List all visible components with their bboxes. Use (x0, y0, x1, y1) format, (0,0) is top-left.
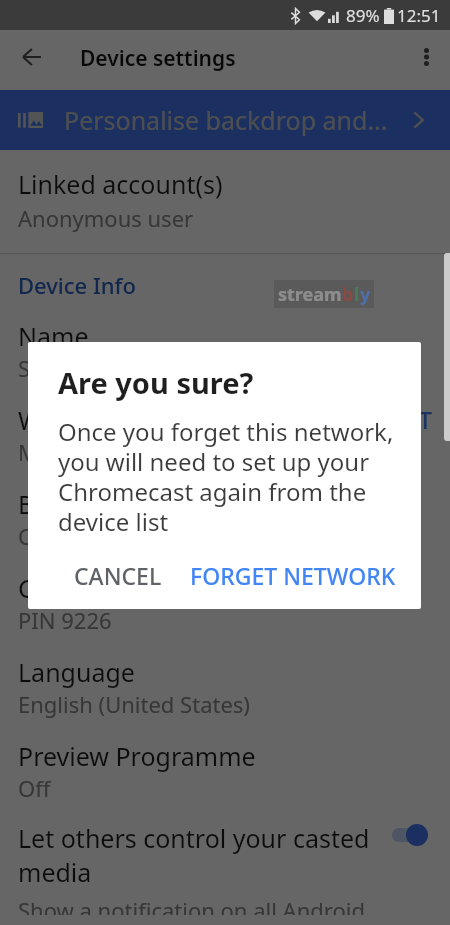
staticText: MyHomeNetwork (18, 437, 201, 467)
staticText: CANCEL (74, 560, 162, 591)
staticText: Let others control your casted media (18, 821, 390, 889)
staticText: l (354, 282, 360, 307)
button[interactable]: Wi-Fi (0, 393, 450, 477)
staticText: stream (278, 282, 342, 307)
staticText: Preview Programme (18, 739, 256, 773)
staticText: Off (18, 773, 51, 803)
button[interactable]: FORGET NETWORK (176, 550, 410, 601)
staticText: b (342, 282, 354, 307)
staticText: Once you forget this network, you will n… (58, 415, 399, 538)
button[interactable]: Personalise backdrop and... (0, 90, 450, 150)
staticText: Language (18, 655, 135, 689)
button[interactable]: EDIT (379, 403, 432, 436)
staticText: Wi-Fi (18, 403, 76, 437)
button[interactable]: Guest mode (0, 561, 450, 645)
staticText: English (United States) (18, 689, 250, 719)
button[interactable]: Let others control your casted media (0, 813, 450, 925)
staticText: Connected (18, 521, 130, 551)
staticText: Personalise backdrop and... (64, 103, 388, 137)
staticText: 12:51 (397, 4, 441, 27)
staticText: y (360, 282, 371, 307)
button[interactable]: CANCEL (60, 550, 176, 601)
staticText: Device settings (80, 44, 236, 73)
staticText: EDIT (379, 403, 432, 436)
staticText: Sitting room TV (18, 353, 178, 383)
staticText: 89% (346, 4, 380, 27)
staticText: Show a notification on all Android (18, 895, 365, 915)
staticText: Name (18, 319, 89, 353)
staticText: Device Info (18, 270, 136, 300)
button[interactable]: Bluetooth (0, 477, 450, 561)
button[interactable]: Back (9, 35, 53, 79)
button[interactable]: Linked account(s) (0, 167, 450, 253)
staticText: Are you sure? (58, 363, 254, 402)
staticText: FORGET NETWORK (190, 560, 396, 591)
staticText: PIN 9226 (18, 605, 112, 635)
button[interactable]: Toggle let others control media (392, 824, 428, 846)
button[interactable]: Preview Programme (0, 729, 450, 813)
staticText: Bluetooth (18, 487, 135, 521)
staticText: Anonymous user (18, 203, 194, 233)
staticText: Linked account(s) (18, 167, 223, 201)
button[interactable]: More options (404, 35, 448, 79)
staticText: Guest mode (18, 571, 162, 605)
button[interactable]: Name (0, 309, 450, 393)
button[interactable]: Language (0, 645, 450, 729)
